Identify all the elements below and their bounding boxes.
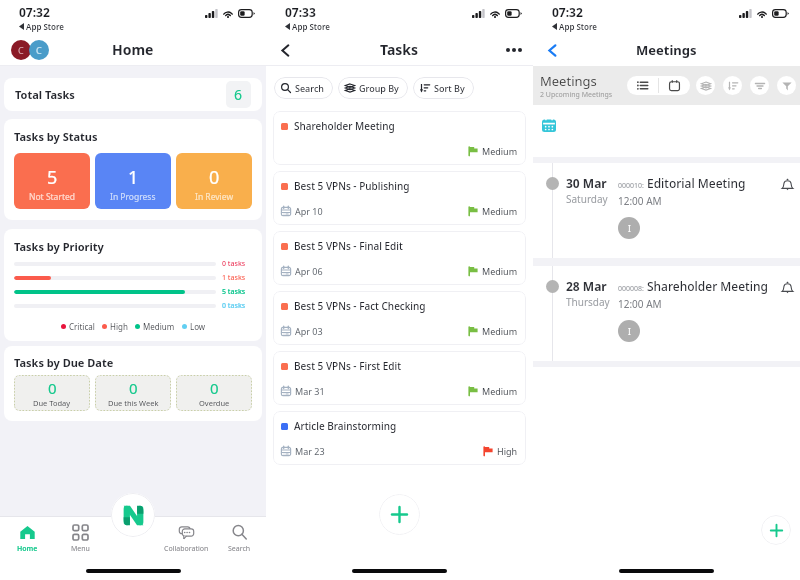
- button[interactable]: layers: [696, 76, 715, 95]
- staticText: 1: [128, 165, 139, 190]
- button[interactable]: More options: [501, 37, 527, 63]
- staticText: 0: [210, 378, 219, 398]
- staticText: Apr 06: [295, 265, 323, 277]
- button[interactable]: filter: [777, 76, 796, 95]
- button[interactable]: Profiles: [11, 40, 51, 60]
- button[interactable]: 0: [95, 375, 171, 411]
- button[interactable]: group: [750, 76, 769, 95]
- staticText: Due Today: [33, 398, 71, 408]
- staticText: Tasks by Status: [14, 129, 98, 144]
- staticText: C: [18, 44, 24, 56]
- staticText: Meetings: [636, 41, 697, 59]
- staticText: Home: [17, 544, 38, 554]
- staticText: Home: [112, 40, 154, 59]
- staticText: Medium: [482, 145, 518, 157]
- button[interactable]: sort: [723, 76, 742, 95]
- button[interactable]: 1: [95, 153, 171, 209]
- staticText: 000010:: [618, 181, 644, 191]
- staticText: 5 tasks: [222, 287, 246, 297]
- staticText: Sort By: [434, 82, 465, 94]
- button[interactable]: Best 5 VPNs - Publishing: [273, 171, 526, 225]
- staticText: Article Brainstorming: [294, 419, 397, 433]
- staticText: Search: [295, 82, 324, 94]
- staticText: Mar 23: [295, 445, 325, 457]
- staticText: Tasks: [380, 40, 419, 59]
- button[interactable]: Sort By: [413, 77, 474, 99]
- staticText: Best 5 VPNs - Publishing: [294, 179, 410, 193]
- staticText: Not Started: [29, 191, 75, 203]
- staticText: Best 5 VPNs - Fact Checking: [294, 299, 426, 313]
- staticText: Apr 03: [295, 325, 323, 337]
- button[interactable]: Search: [274, 77, 333, 99]
- staticText: 12:00 AM: [618, 297, 662, 311]
- staticText: App Store: [559, 21, 598, 32]
- button[interactable]: Back: [539, 37, 565, 63]
- button[interactable]: 5: [14, 153, 90, 209]
- staticText: C: [36, 44, 42, 56]
- staticText: 0: [48, 378, 57, 398]
- staticText: Saturday: [566, 192, 608, 206]
- staticText: In Review: [195, 191, 234, 203]
- staticText: 000008:: [618, 284, 644, 294]
- button[interactable]: calendar: [659, 76, 690, 95]
- button[interactable]: Home: [0, 517, 54, 562]
- staticText: Collaboration: [164, 544, 209, 554]
- button[interactable]: Calendar view: [542, 118, 556, 132]
- button[interactable]: Menu: [54, 517, 107, 562]
- button[interactable]: Reminder: [778, 278, 796, 296]
- staticText: 0 tasks: [222, 259, 246, 269]
- staticText: 0: [129, 378, 138, 398]
- staticText: App Store: [26, 21, 65, 32]
- staticText: Overdue: [199, 398, 230, 408]
- staticText: High: [110, 321, 128, 332]
- staticText: 12:00 AM: [618, 194, 662, 208]
- button[interactable]: 0: [176, 153, 252, 209]
- button[interactable]: Search: [213, 517, 266, 562]
- staticText: Total Tasks: [15, 87, 226, 102]
- staticText: I: [628, 326, 631, 337]
- button[interactable]: Add meeting: [761, 515, 791, 545]
- button[interactable]: 30 Mar: [533, 163, 800, 258]
- staticText: Thursday: [566, 295, 610, 309]
- staticText: Best 5 VPNs - First Edit: [294, 359, 401, 373]
- button[interactable]: Best 5 VPNs - Final Edit: [273, 231, 526, 285]
- staticText: Medium: [482, 325, 518, 337]
- button[interactable]: Best 5 VPNs - First Edit: [273, 351, 526, 405]
- staticText: Meetings: [540, 72, 597, 90]
- staticText: Search: [228, 544, 251, 554]
- button[interactable]: list: [627, 76, 658, 95]
- staticText: Tasks by Due Date: [14, 355, 114, 370]
- staticText: 0: [209, 165, 220, 190]
- staticText: 1 tasks: [222, 273, 246, 283]
- button[interactable]: 0: [14, 375, 90, 411]
- staticText: Medium: [482, 265, 518, 277]
- button[interactable]: Reminder: [778, 175, 796, 193]
- button[interactable]: Shareholder Meeting: [273, 111, 526, 165]
- staticText: 28 Mar: [566, 278, 607, 294]
- staticText: I: [628, 223, 631, 234]
- staticText: 07:33: [285, 4, 316, 20]
- staticText: 5: [47, 165, 58, 190]
- staticText: 30 Mar: [566, 175, 607, 191]
- button[interactable]: Collaboration: [160, 517, 213, 562]
- button[interactable]: Article Brainstorming: [273, 411, 526, 465]
- staticText: Best 5 VPNs - Final Edit: [294, 239, 403, 253]
- staticText: 0 tasks: [222, 301, 246, 311]
- staticText: Due this Week: [108, 398, 159, 408]
- staticText: Medium: [482, 385, 518, 397]
- button[interactable]: 28 Mar: [533, 266, 800, 361]
- staticText: 2 Upcoming Meetings: [540, 90, 613, 100]
- staticText: Editorial Meeting: [647, 175, 746, 191]
- button[interactable]: Nifty home: [111, 493, 155, 537]
- button[interactable]: Best 5 VPNs - Fact Checking: [273, 291, 526, 345]
- button[interactable]: Add task: [379, 494, 420, 535]
- button[interactable]: Back: [272, 37, 298, 63]
- button[interactable]: 0: [176, 375, 252, 411]
- staticText: Shareholder Meeting: [294, 119, 395, 133]
- staticText: 07:32: [19, 4, 50, 20]
- staticText: 07:32: [552, 4, 583, 20]
- staticText: Critical: [69, 321, 95, 332]
- staticText: Apr 10: [295, 205, 323, 217]
- staticText: 6: [234, 85, 243, 104]
- button[interactable]: Group By: [338, 77, 408, 99]
